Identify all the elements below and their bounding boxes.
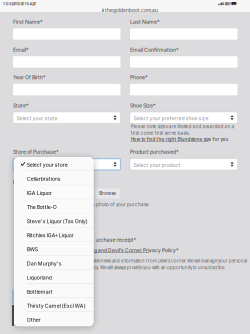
staticText: Select your state [17, 115, 58, 121]
button[interactable]: Select your product [130, 159, 237, 170]
staticText: IGA Liquor [27, 190, 52, 196]
staticText: thegoldenboot.com.au [105, 7, 158, 13]
staticText: Store of Purchase* [13, 149, 59, 155]
staticText: Email* [13, 47, 29, 53]
staticText: BWS [27, 246, 38, 253]
staticText: How to find the right Blundstone size fo… [130, 137, 228, 142]
staticText: Browse [99, 191, 116, 196]
button[interactable]: Cellarbrations [14, 171, 93, 185]
staticText: Upload a photo of your purchase [75, 202, 149, 207]
staticText: Last Name* [130, 19, 160, 25]
button[interactable]: Ritchies IGA+ Liquor [14, 227, 93, 242]
button[interactable]: BWS [14, 242, 93, 256]
staticText: 4G [222, 1, 228, 6]
staticText: Year Of Birth* [13, 74, 46, 81]
button[interactable]: Thirsty Camel (Excl WA) [14, 298, 93, 312]
button[interactable]: The Bottle-O [14, 199, 93, 213]
staticText: The Bottle-O [27, 204, 57, 210]
button[interactable]: Text field [13, 28, 120, 40]
staticText: Thirsty Camel (Excl WA) [27, 303, 86, 309]
staticText: Product purchased* [130, 149, 179, 155]
staticText: First Name* [13, 19, 43, 25]
staticText: Select your store [17, 162, 58, 168]
staticText: Ritchies IGA+ Liquor [27, 232, 74, 238]
button[interactable]: Browse [95, 189, 120, 198]
staticText: first come first serve basis. [130, 130, 189, 136]
button[interactable]: Select your state [13, 112, 120, 123]
staticText: 68% [225, 1, 233, 6]
staticText: Email Confirmation* [130, 47, 179, 53]
button[interactable]: Liquorland [14, 270, 93, 284]
staticText: Shoe Size* [130, 102, 156, 109]
button[interactable]: Select your store [13, 159, 120, 170]
staticText: Select your preferred shoe size [134, 115, 209, 121]
staticText: Bottlemart [27, 289, 53, 295]
button[interactable]: Dan Murphy's [14, 256, 93, 270]
staticText: Proof of Purchase* [13, 179, 59, 185]
button[interactable]: Select your preferred shoe size [130, 112, 237, 123]
button[interactable]: Text field [130, 28, 237, 40]
button[interactable]: Bottlemart [14, 284, 93, 298]
staticText: eive news and information from Devil's C… [93, 258, 247, 264]
button[interactable]: Text field [13, 56, 120, 68]
staticText: g and Devil's Corner Privacy Policy* [94, 248, 178, 253]
button[interactable]: Other [14, 312, 93, 326]
staticText: urchase receipt* [95, 237, 136, 243]
button[interactable]: Steve's Liquor (Tas Only) [14, 213, 93, 227]
button[interactable]: Text field [130, 56, 237, 68]
staticText: Dan Murphy's [27, 260, 62, 267]
staticText: Select your product [134, 162, 181, 168]
staticText: Other [27, 317, 41, 323]
staticText: Phone* [130, 74, 148, 81]
staticText: Select your store [27, 162, 68, 168]
staticText: Sat 15 Apr [17, 1, 36, 6]
button[interactable]: Select your store [14, 157, 93, 171]
staticText: State* [13, 102, 29, 109]
button[interactable]: IGA Liquor [14, 185, 93, 199]
staticText: 1:03 pm [3, 1, 17, 6]
staticText: Please note sizes are limited and awarde… [130, 124, 234, 129]
staticText: Cellarbrations [27, 176, 61, 182]
staticText: Liquorland [27, 274, 52, 281]
staticText: icy. We will always provide you with an … [93, 265, 225, 270]
staticText: Steve's Liquor (Tas Only) [27, 218, 88, 224]
